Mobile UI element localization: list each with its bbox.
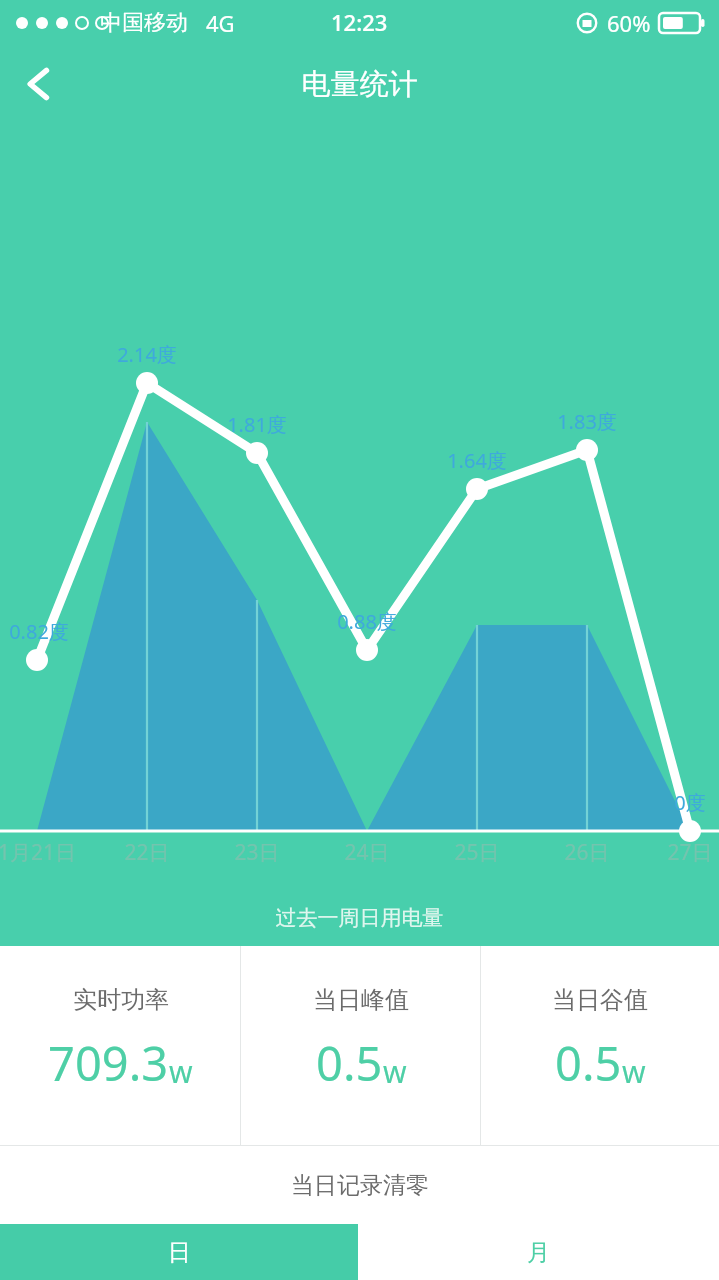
- staticText: 实时功率: [73, 985, 169, 1015]
- staticText: 24日: [317, 838, 417, 867]
- staticText: 23日: [207, 838, 307, 867]
- staticText: 月: [527, 1238, 550, 1267]
- staticText: 709.3: [48, 1031, 169, 1095]
- button[interactable]: Back: [8, 53, 70, 115]
- staticText: 日: [168, 1238, 191, 1267]
- staticText: 25日: [427, 838, 527, 867]
- staticText: 电量统计: [0, 66, 719, 103]
- button[interactable]: 日: [0, 1224, 358, 1280]
- button[interactable]: 当日记录清零: [0, 1146, 719, 1224]
- staticText: 22日: [97, 838, 197, 867]
- staticText: 60%: [607, 8, 651, 38]
- staticText: 1.81度: [212, 411, 302, 438]
- staticText: 2.14度: [102, 341, 192, 368]
- staticText: 中国移动: [100, 9, 188, 37]
- staticText: 1.64度: [432, 447, 522, 474]
- staticText: 0.5: [316, 1031, 383, 1095]
- button[interactable]: 当日谷值: [481, 946, 719, 1145]
- staticText: 26日: [537, 838, 637, 867]
- button[interactable]: 当日峰值: [241, 946, 480, 1145]
- button[interactable]: 实时功率: [0, 946, 240, 1145]
- staticText: 当日峰值: [313, 985, 409, 1015]
- staticText: 0度: [645, 789, 719, 816]
- staticText: 1月21日: [0, 838, 87, 867]
- staticText: 4G: [206, 8, 235, 38]
- staticText: 0.88度: [322, 608, 412, 635]
- staticText: w: [622, 1051, 646, 1092]
- staticText: 1.83度: [542, 408, 632, 435]
- staticText: 过去一周日用电量: [0, 905, 719, 931]
- staticText: 0.82度: [0, 618, 84, 645]
- staticText: 0.5: [555, 1031, 622, 1095]
- staticText: 12:23: [331, 7, 388, 37]
- staticText: w: [169, 1051, 193, 1092]
- staticText: 当日谷值: [552, 985, 648, 1015]
- staticText: 27日: [640, 838, 719, 867]
- button[interactable]: 月: [358, 1224, 719, 1280]
- staticText: w: [383, 1051, 407, 1092]
- staticText: 当日记录清零: [291, 1171, 429, 1200]
